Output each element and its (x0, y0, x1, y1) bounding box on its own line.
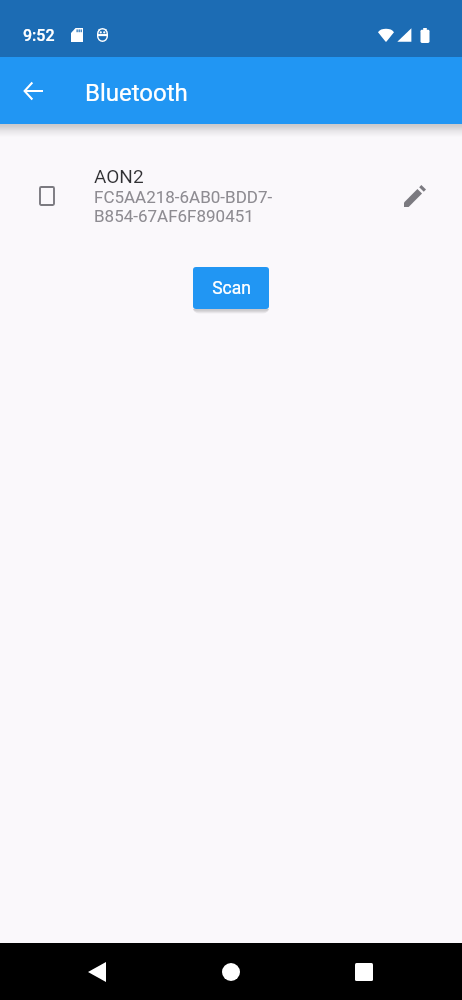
staticText: AON2 (94, 165, 144, 187)
button[interactable]: Back (69, 943, 125, 1000)
button[interactable]: Navigate up (0, 57, 67, 124)
staticText: Scan (212, 278, 251, 299)
button[interactable]: Edit (393, 174, 437, 218)
staticText: 9:52 (23, 26, 55, 45)
button[interactable]: Select device (0, 165, 462, 227)
button[interactable]: Scan (193, 267, 269, 309)
staticText: Bluetooth (85, 79, 188, 107)
staticText: FC5AA218-6AB0-BDD7-B854-67AF6F890451 (94, 187, 276, 227)
button[interactable]: Home (203, 943, 259, 1000)
button[interactable]: Select device (27, 176, 67, 216)
button[interactable]: Recent apps (336, 943, 392, 1000)
